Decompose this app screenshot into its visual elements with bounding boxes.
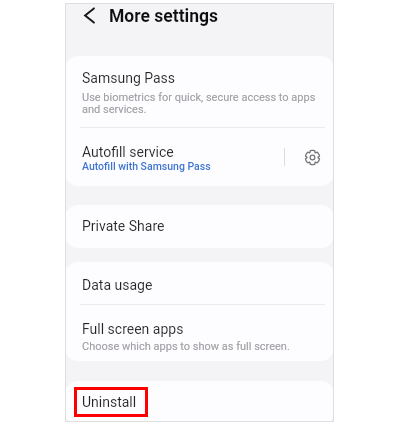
staticText: Private Share bbox=[82, 218, 165, 234]
staticText: Full screen apps bbox=[82, 321, 184, 337]
button[interactable]: Data usage bbox=[65, 262, 334, 304]
button[interactable]: Private Share bbox=[65, 205, 334, 248]
button[interactable]: Navigate up bbox=[79, 5, 100, 26]
button[interactable]: Autofill service bbox=[65, 128, 284, 186]
staticText: Autofill with Samsung Pass bbox=[82, 160, 211, 172]
button[interactable]: Uninstall bbox=[65, 381, 334, 422]
button[interactable]: Samsung Pass bbox=[65, 56, 334, 127]
staticText: Autofill service bbox=[82, 144, 174, 160]
staticText: Uninstall bbox=[82, 394, 137, 410]
staticText: Samsung Pass bbox=[82, 70, 176, 86]
button[interactable]: Full screen apps bbox=[65, 305, 334, 361]
staticText: Data usage bbox=[82, 277, 153, 293]
button[interactable]: Autofill settings bbox=[292, 128, 333, 186]
staticText: More settings bbox=[109, 6, 219, 27]
staticText: Use biometrics for quick, secure access … bbox=[82, 91, 322, 116]
staticText: Choose which apps to show as full screen… bbox=[82, 340, 290, 353]
